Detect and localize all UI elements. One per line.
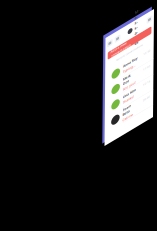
staticText: 12:30: [94, 90, 112, 99]
button[interactable]: Mark Doe: [0, 120, 120, 157]
button[interactable]: Add a new conversation: [0, 38, 120, 56]
button[interactable]: Anna Ray: [0, 83, 120, 120]
staticText: 11:02: [94, 127, 112, 136]
